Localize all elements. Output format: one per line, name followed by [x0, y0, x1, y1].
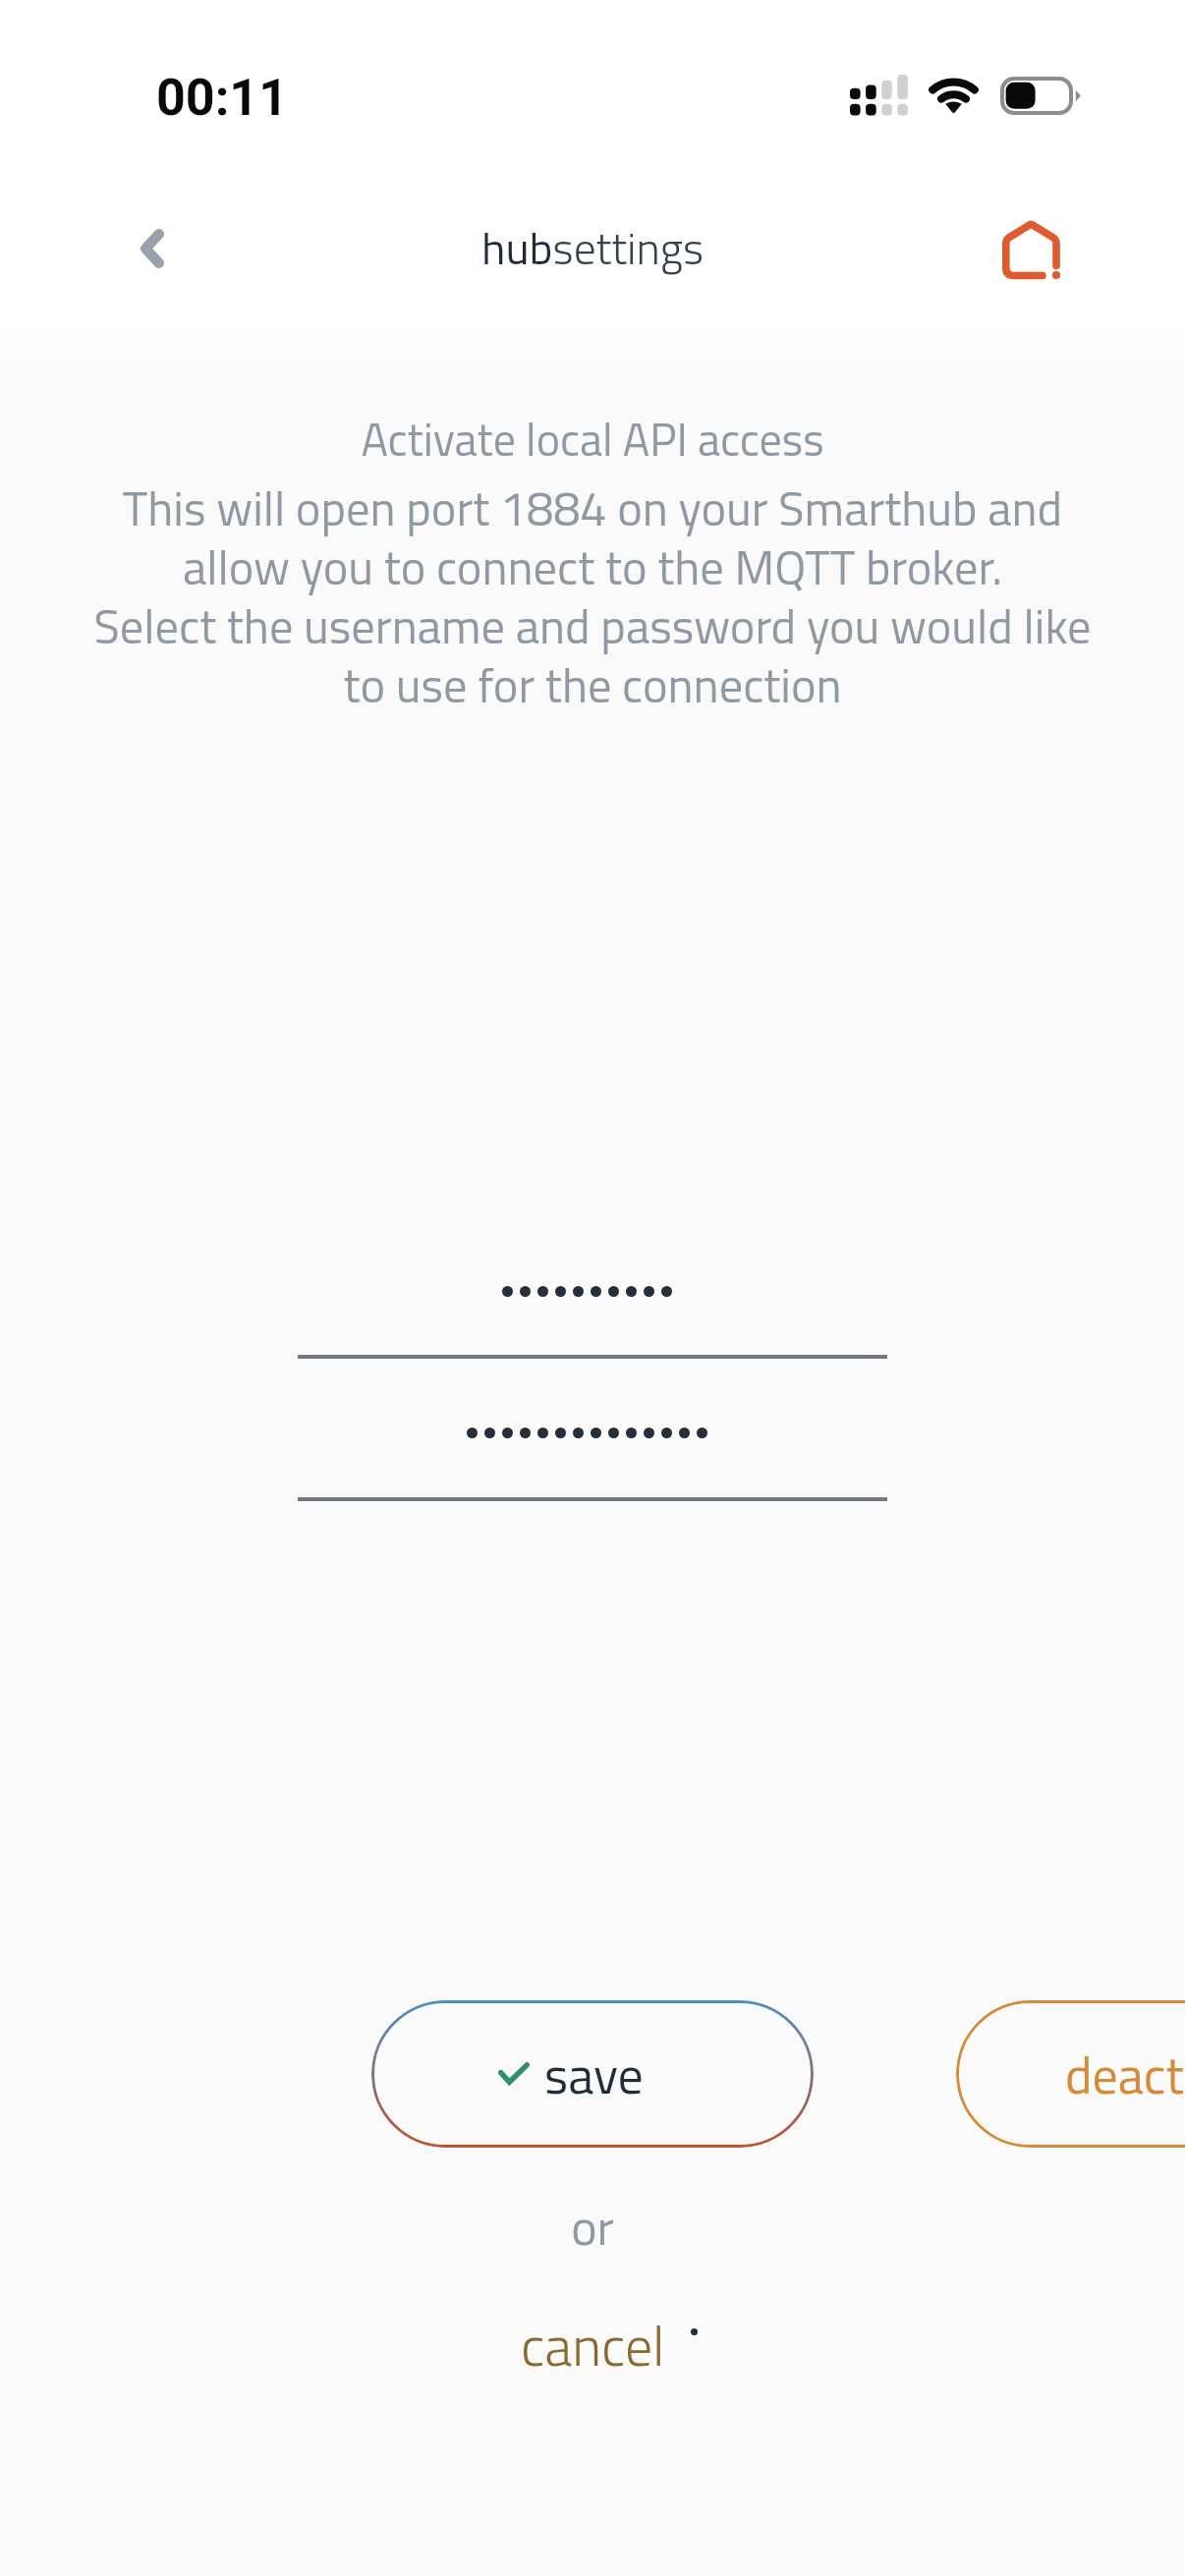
button[interactable]: Back	[110, 206, 195, 291]
button[interactable]: Home	[989, 207, 1074, 292]
staticText: or	[0, 2189, 1185, 2264]
staticText: deactivate	[1065, 2036, 1185, 2113]
button[interactable]: cancel	[521, 2304, 665, 2387]
button[interactable]	[298, 1398, 887, 1516]
staticText: Activate local API access	[0, 405, 1185, 474]
staticText: 00:11	[156, 68, 289, 128]
button[interactable]: save	[371, 2000, 814, 2148]
button[interactable]: deactivate	[956, 2000, 1185, 2148]
staticText: cancel	[521, 2304, 665, 2387]
staticText: save	[544, 2036, 644, 2113]
button[interactable]	[298, 1257, 887, 1374]
staticText: hubsettings	[0, 213, 1185, 281]
staticText: This will open port 1884 on your Smarthu…	[0, 472, 1185, 721]
